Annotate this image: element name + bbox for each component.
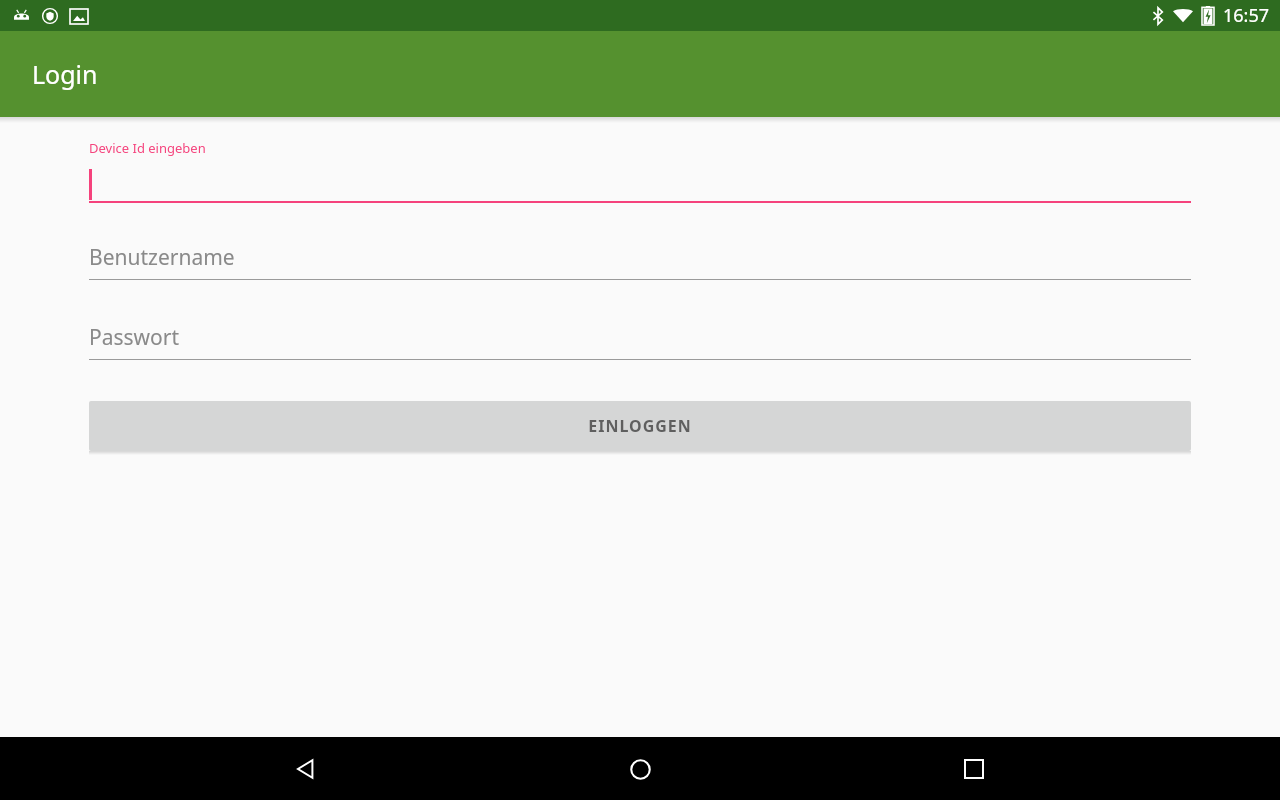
button[interactable]: Benutzername	[89, 241, 1191, 280]
staticText: Benutzername	[89, 243, 235, 272]
button[interactable]: Passwort	[89, 321, 1191, 360]
staticText: EINLOGGEN	[588, 415, 692, 437]
staticText: Login	[32, 57, 98, 91]
staticText: 16:57	[1223, 3, 1270, 28]
button[interactable]: Home	[612, 741, 668, 797]
button[interactable]: Back	[278, 741, 334, 797]
staticText: Passwort	[89, 323, 180, 352]
button[interactable]: EINLOGGEN	[89, 401, 1191, 451]
button[interactable]: Device Id eingeben	[89, 139, 1191, 203]
staticText: Device Id eingeben	[89, 139, 206, 157]
button[interactable]: Recent apps	[946, 741, 1002, 797]
